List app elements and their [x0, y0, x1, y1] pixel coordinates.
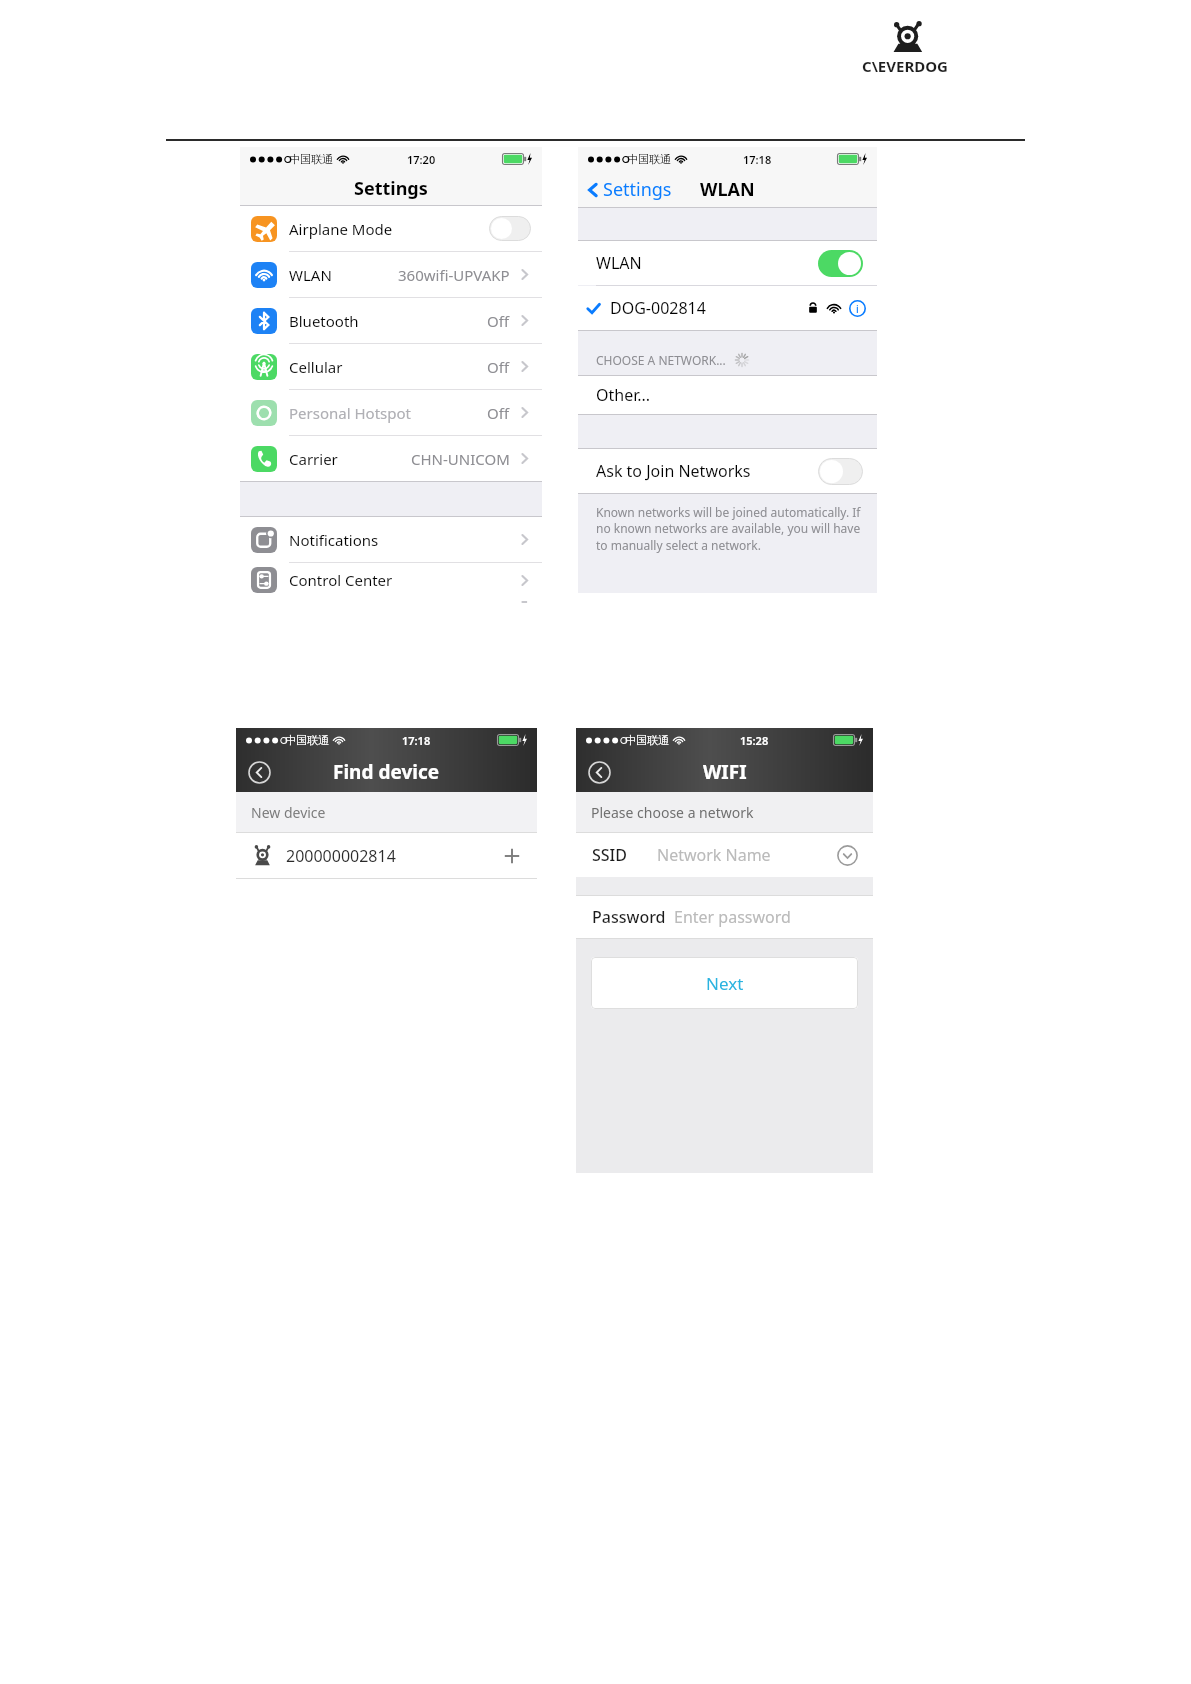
staticText: Network Name [657, 844, 771, 866]
staticText: New device [251, 803, 326, 822]
button[interactable]: Back [588, 761, 611, 784]
staticText: Off [487, 311, 510, 331]
staticText: 中国联通 [285, 733, 329, 747]
staticText: Off [487, 403, 510, 423]
staticText: CHN-UNICOM [411, 449, 510, 469]
staticText: WLAN [700, 177, 755, 202]
button[interactable]: Settings [585, 177, 672, 202]
button[interactable]: Next [591, 957, 858, 1009]
staticText: C\EVERDOG [862, 56, 948, 76]
staticText: Please choose a network [591, 803, 754, 822]
staticText: Off [487, 357, 510, 377]
button[interactable]: WLAN [240, 252, 542, 298]
button[interactable]: Carrier [240, 436, 542, 481]
staticText: Settings [354, 176, 428, 201]
staticText: 中国联通 [627, 152, 671, 166]
button[interactable]: Personal Hotspot [240, 390, 542, 436]
button[interactable]: Ask to Join Networks [596, 449, 863, 493]
staticText: Bluetooth [289, 311, 359, 331]
button[interactable]: Bluetooth [240, 298, 542, 344]
button[interactable]: On [818, 250, 863, 277]
staticText: CHOOSE A NETWORK... [596, 352, 726, 368]
staticText: 200000002814 [286, 845, 396, 867]
button[interactable]: Airplane Mode [240, 206, 542, 252]
button[interactable]: Off [818, 458, 863, 485]
button[interactable]: Other... [596, 376, 877, 414]
staticText: Find device [333, 759, 440, 785]
button[interactable]: 200000002814 [252, 833, 521, 878]
button[interactable]: Back [248, 761, 271, 784]
button[interactable]: WLAN [596, 241, 863, 285]
staticText: WLAN [596, 252, 642, 274]
staticText: 17:18 [402, 733, 431, 748]
staticText: WIFI [703, 759, 747, 785]
staticText: 17:20 [407, 152, 436, 167]
staticText: Enter password [674, 906, 791, 928]
staticText: Password [592, 906, 666, 928]
button[interactable]: Cellular [240, 344, 542, 390]
staticText: 17:18 [743, 152, 772, 167]
button[interactable]: Notifications [240, 517, 542, 563]
staticText: Personal Hotspot [289, 403, 411, 423]
staticText: Other... [596, 384, 651, 406]
button[interactable]: DOG-002814 [586, 286, 866, 330]
staticText: Carrier [289, 449, 338, 469]
staticText: Notifications [289, 530, 379, 550]
staticText: 中国联通 [625, 733, 669, 747]
staticText: Ask to Join Networks [596, 460, 751, 482]
staticText: Known networks will be joined automatica… [596, 504, 861, 554]
staticText: i [856, 302, 859, 316]
button[interactable]: Network details [849, 300, 866, 317]
staticText: Next [706, 972, 744, 995]
button[interactable]: Choose network [837, 845, 858, 866]
staticText: Cellular [289, 357, 343, 377]
staticText: 中国联通 [289, 152, 333, 166]
button[interactable]: Add device [503, 847, 521, 865]
staticText: Airplane Mode [289, 219, 393, 239]
button[interactable]: Control Center [240, 563, 542, 597]
staticText: WLAN [289, 265, 332, 285]
staticText: 15:28 [740, 733, 769, 748]
staticText: 360wifi-UPVAKP [398, 265, 510, 285]
button[interactable]: Password [592, 896, 858, 938]
staticText: DOG-002814 [610, 297, 706, 319]
staticText: Settings [603, 177, 672, 202]
button[interactable]: SSID [592, 833, 858, 877]
staticText: Control Center [289, 570, 393, 590]
staticText: SSID [592, 844, 627, 866]
button[interactable]: Off [489, 216, 531, 241]
